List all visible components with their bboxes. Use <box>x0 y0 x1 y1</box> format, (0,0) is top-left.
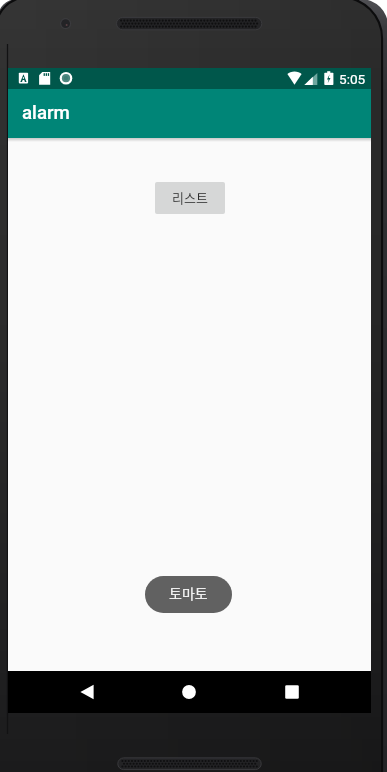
button[interactable]: 토마토 <box>145 576 232 613</box>
button[interactable]: 리스트 <box>155 182 225 214</box>
staticText: 리스트 <box>172 188 208 207</box>
button[interactable]: Back <box>66 671 108 713</box>
button[interactable]: Home <box>168 671 210 713</box>
staticText: 5:05 <box>339 71 366 87</box>
staticText: alarm <box>22 102 70 124</box>
staticText: 토마토 <box>169 583 208 603</box>
button[interactable]: Recents <box>271 671 313 713</box>
